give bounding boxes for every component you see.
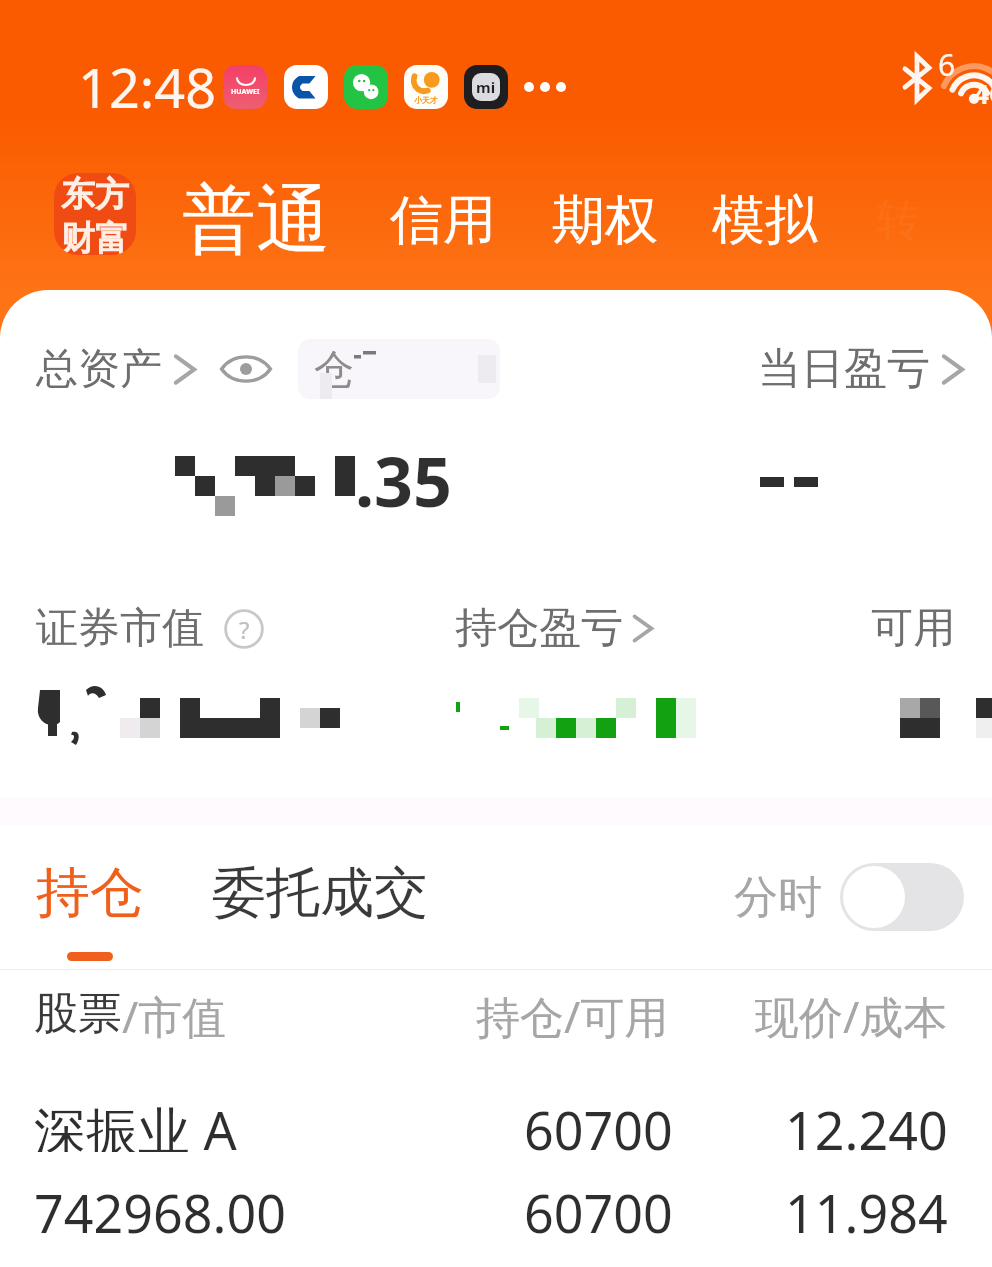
button[interactable]: East Money logo xyxy=(54,173,136,255)
staticText: 总资产 xyxy=(36,343,162,396)
staticText: 信用 xyxy=(390,187,496,254)
staticText: 可用 xyxy=(871,602,955,655)
staticText: 持仓/可用 xyxy=(476,986,669,1046)
staticText: 持仓盈亏 xyxy=(455,602,623,655)
button[interactable]: 总资产 xyxy=(36,343,198,396)
staticText: 4G xyxy=(974,76,992,111)
staticText: 期权 xyxy=(552,187,658,254)
staticText: 深振业 A xyxy=(34,1094,237,1152)
staticText: 转 xyxy=(876,193,920,248)
staticText: 60700 xyxy=(524,1177,673,1235)
staticText: mi xyxy=(476,77,496,97)
button[interactable]: 深振业 A xyxy=(0,1062,992,1235)
staticText: 12.240 xyxy=(785,1094,948,1152)
staticText: 12:48 xyxy=(78,50,217,124)
button[interactable]: 委托成交 xyxy=(210,859,430,927)
button[interactable]: 持仓 xyxy=(34,859,146,961)
staticText: 普通 xyxy=(182,174,330,267)
staticText: 模拟 xyxy=(712,187,818,254)
staticText: 6 xyxy=(938,44,956,85)
staticText: 持仓 xyxy=(36,859,144,927)
staticText: 小天才 xyxy=(414,95,438,105)
staticText: 委托成交 xyxy=(212,859,428,927)
staticText: 60700 xyxy=(524,1094,673,1152)
staticText: 财富 xyxy=(61,217,129,255)
staticText: 当日盈亏 xyxy=(758,342,930,396)
button[interactable]: 信用 xyxy=(390,187,496,254)
button[interactable]: Help xyxy=(224,609,264,649)
staticText: 东方 xyxy=(61,173,129,216)
button[interactable]: Toggle balance visibility xyxy=(220,343,272,395)
staticText: 现价/成本 xyxy=(755,986,948,1046)
staticText: 742968.00 xyxy=(34,1177,286,1235)
staticText: 仓 xyxy=(314,344,354,394)
button[interactable]: 模拟 xyxy=(712,187,818,254)
staticText: HUAWEI xyxy=(231,87,260,97)
staticText: 分时 xyxy=(734,870,822,925)
button[interactable]: Time sharing toggle xyxy=(734,863,964,931)
staticText: 证券市值 xyxy=(36,602,204,655)
button[interactable]: 当日盈亏 xyxy=(758,342,966,396)
staticText: /市值 xyxy=(122,986,227,1046)
staticText: 11.984 xyxy=(785,1177,948,1235)
staticText: ? xyxy=(239,613,250,646)
staticText: .35 xyxy=(355,434,452,524)
button[interactable]: 持仓盈亏 xyxy=(455,602,655,655)
button[interactable]: 期权 xyxy=(552,187,658,254)
staticText: 股票 xyxy=(34,986,122,1041)
button[interactable]: 普通 xyxy=(182,174,330,267)
